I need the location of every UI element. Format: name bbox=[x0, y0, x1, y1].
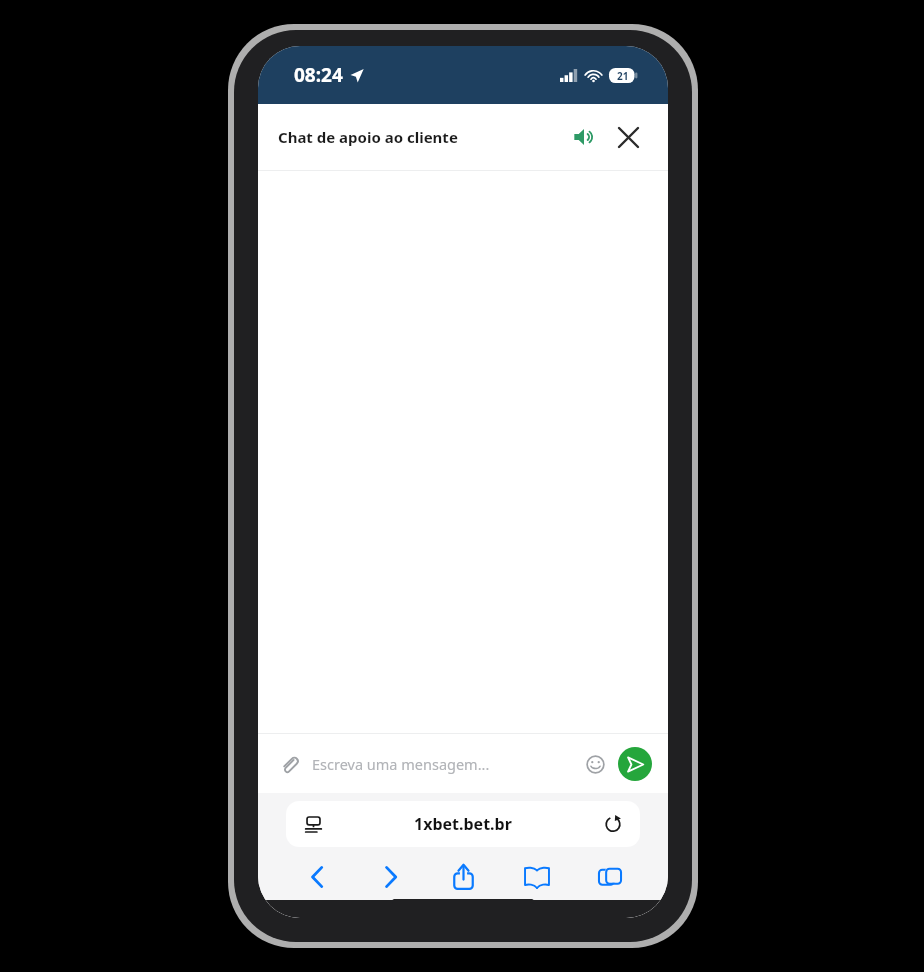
button[interactable]: Page settings bbox=[300, 811, 326, 837]
staticText: 1xbet.bet.br bbox=[414, 813, 512, 835]
button[interactable]: Send bbox=[618, 747, 652, 781]
staticText: 21 bbox=[617, 69, 629, 83]
button[interactable]: Share bbox=[427, 855, 500, 899]
button[interactable]: Sound bbox=[564, 117, 604, 157]
button[interactable]: 1xbet.bet.br bbox=[286, 801, 640, 847]
button[interactable]: Close bbox=[608, 117, 648, 157]
button[interactable]: Bookmarks bbox=[500, 855, 573, 899]
staticText: 08:24 bbox=[294, 62, 343, 88]
button[interactable]: Back bbox=[280, 855, 354, 899]
button[interactable]: Tabs bbox=[573, 855, 646, 899]
button[interactable]: Forward bbox=[354, 855, 427, 899]
button[interactable]: Emoji bbox=[578, 747, 612, 781]
staticText: Escreva uma mensagem... bbox=[312, 754, 490, 774]
button[interactable]: Reload bbox=[600, 811, 626, 837]
button[interactable]: Attach file bbox=[272, 747, 306, 781]
staticText: Chat de apoio ao cliente bbox=[278, 127, 458, 147]
